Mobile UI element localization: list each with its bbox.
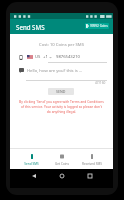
staticText: Received SMS	[82, 162, 102, 166]
button[interactable]: Received SMS	[77, 149, 107, 170]
staticText: SEND	[56, 89, 66, 94]
button[interactable]: Recents	[85, 171, 95, 181]
staticText: Cost: 10 Coins per SMS	[10, 42, 113, 48]
staticText: 99992 Coins	[90, 24, 108, 28]
staticText: Hello, how are you? this is ...	[27, 68, 83, 74]
staticText: US	[35, 54, 41, 60]
button[interactable]: SEND	[48, 88, 74, 95]
staticText: Get Coins	[55, 162, 69, 166]
staticText: 47/160	[95, 81, 106, 85]
staticText: 9876543210	[56, 54, 80, 60]
button[interactable]: Get Coins	[47, 149, 77, 170]
button[interactable]: Back	[29, 171, 39, 181]
button[interactable]: Home	[57, 171, 67, 181]
button[interactable]: Send SMS	[16, 149, 47, 170]
staticText: +1	[43, 54, 48, 60]
staticText: By clicking 'Send' you agree with Terms …	[10, 99, 113, 114]
staticText: Send SMS	[16, 23, 45, 31]
staticText: Send SMS	[24, 162, 39, 166]
button[interactable]: 99992 Coins	[85, 23, 109, 29]
